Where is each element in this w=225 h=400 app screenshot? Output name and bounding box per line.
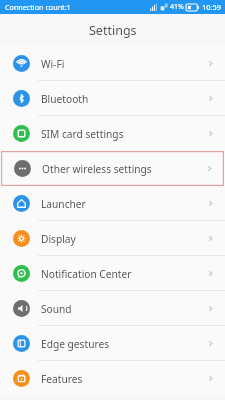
staticText: Bluetooth <box>41 92 89 106</box>
staticText: Edge gestures <box>41 337 110 351</box>
button[interactable]: Edge gestures <box>0 326 225 361</box>
staticText: Sound <box>41 302 72 316</box>
button[interactable]: Launcher <box>0 186 225 221</box>
button[interactable]: Display <box>0 221 225 256</box>
button[interactable]: Notification Center <box>0 256 225 291</box>
staticText: Notification Center <box>41 267 132 281</box>
button[interactable]: Sound <box>0 291 225 326</box>
staticText: 10:59 <box>202 2 221 12</box>
staticText: SIM card settings <box>41 127 124 141</box>
staticText: Connection count:1 <box>5 2 71 12</box>
button[interactable]: Other wireless settings <box>1 151 224 186</box>
button[interactable]: Wi-Fi <box>0 46 225 81</box>
staticText: Launcher <box>41 197 86 211</box>
staticText: Display <box>41 232 76 246</box>
staticText: Other wireless settings <box>42 162 152 176</box>
button[interactable]: SIM card settings <box>0 116 225 151</box>
button[interactable]: Features <box>0 361 225 396</box>
staticText: Settings <box>89 22 137 39</box>
button[interactable]: Bluetooth <box>0 81 225 116</box>
staticText: 41% <box>170 2 184 12</box>
staticText: Features <box>41 372 83 386</box>
staticText: Wi-Fi <box>41 57 65 71</box>
